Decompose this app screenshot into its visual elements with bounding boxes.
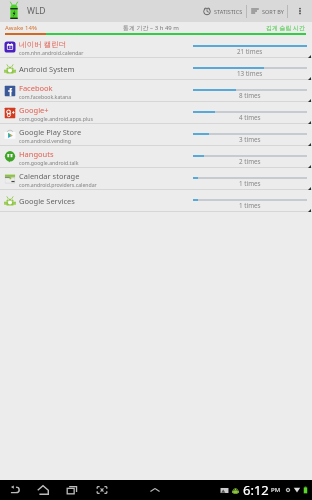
button[interactable]: Google Services: [0, 190, 312, 212]
staticText: Awake 14%: [5, 24, 37, 32]
button[interactable]: Home: [34, 480, 52, 500]
staticText: 13 times: [237, 69, 263, 78]
staticText: Android System: [19, 64, 75, 74]
button[interactable]: More options: [288, 0, 312, 22]
button[interactable]: Recents: [63, 480, 81, 500]
staticText: 네이버 캘린더: [19, 39, 66, 49]
button[interactable]: SORT BY: [247, 0, 287, 22]
staticText: 6:12: [243, 481, 269, 499]
button[interactable]: Google+: [0, 102, 312, 124]
staticText: Calendar storage: [19, 171, 80, 181]
staticText: com.google.android.apps.plus: [19, 115, 93, 122]
staticText: com.google.android.talk: [19, 159, 79, 166]
button[interactable]: Screenshot: [93, 480, 111, 500]
button[interactable]: Expand status bar: [146, 480, 164, 500]
button[interactable]: Back: [6, 480, 24, 500]
staticText: Google Play Store: [19, 127, 82, 137]
button[interactable]: STATISTICS: [199, 0, 246, 22]
staticText: com.android.vending: [19, 137, 71, 144]
staticText: 깁게 슬립 시간: [266, 24, 306, 32]
staticText: 2 times: [239, 157, 261, 166]
staticText: SORT BY: [262, 8, 284, 15]
button[interactable]: Android System: [0, 58, 312, 80]
staticText: WLD: [27, 5, 46, 17]
button[interactable]: 네이버 캘린더: [0, 36, 312, 58]
staticText: 8 times: [239, 91, 261, 100]
staticText: Google Services: [19, 196, 75, 206]
staticText: 4 times: [239, 113, 261, 122]
staticText: 3 times: [239, 135, 261, 144]
staticText: Facebook: [19, 83, 53, 93]
staticText: PM: [271, 486, 281, 494]
staticText: STATISTICS: [214, 8, 243, 15]
button[interactable]: Google Play Store: [0, 124, 312, 146]
staticText: Google+: [19, 105, 49, 115]
staticText: com.android.providers.calendar: [19, 181, 97, 188]
button[interactable]: Facebook: [0, 80, 312, 102]
staticText: com.nhn.android.calendar: [19, 49, 84, 56]
staticText: 1 times: [239, 201, 261, 210]
staticText: Hangouts: [19, 149, 54, 159]
button[interactable]: Calendar storage: [0, 168, 312, 190]
button[interactable]: Hangouts: [0, 146, 312, 168]
staticText: com.facebook.katana: [19, 93, 72, 100]
staticText: 1 times: [239, 179, 261, 188]
staticText: 통계 기간 – 3 h 49 m: [123, 24, 179, 32]
staticText: 21 times: [237, 47, 263, 56]
